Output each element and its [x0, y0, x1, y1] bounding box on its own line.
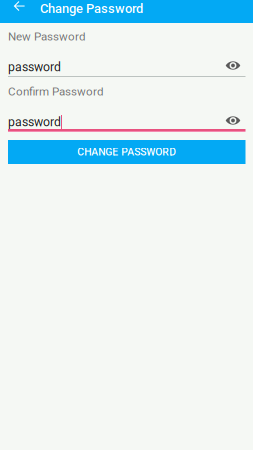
staticText: password — [8, 115, 61, 129]
staticText: Change Password — [40, 1, 143, 16]
button[interactable]: Back — [0, 0, 31, 17]
button[interactable]: CHANGE PASSWORD — [8, 140, 245, 164]
staticText: Confirm Password — [8, 85, 104, 98]
button[interactable]: Show password — [219, 60, 245, 74]
button[interactable]: Show password — [219, 115, 245, 129]
staticText: CHANGE PASSWORD — [77, 146, 176, 158]
staticText: New Password — [8, 30, 86, 43]
staticText: password — [8, 60, 61, 74]
